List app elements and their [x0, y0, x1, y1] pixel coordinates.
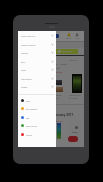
- staticText: Footwear: [21, 86, 28, 88]
- button[interactable]: Coupons: [18, 130, 56, 139]
- staticText: Fashion: [21, 69, 27, 71]
- staticText: Health & Beauty: [21, 78, 32, 80]
- button[interactable]: Big Offers: [20, 49, 78, 54]
- staticText: Jackets &: [54, 94, 62, 96]
- button[interactable]: [55, 80, 62, 85]
- button[interactable]: Sign In: [66, 33, 71, 39]
- button[interactable]: Mobiles: [28, 44, 35, 47]
- staticText: Coupons: [26, 134, 32, 136]
- staticText: Moto G5 Plus: [69, 94, 81, 96]
- staticText: 50% OFF: [55, 120, 63, 123]
- staticText: Mobiles & Electronics: [21, 35, 36, 37]
- staticText: Appliances: [21, 52, 29, 54]
- staticText: Rs 14,999: [69, 97, 78, 99]
- button[interactable]: Laptops & Computers: [18, 40, 56, 49]
- button[interactable]: Footwear: [18, 82, 56, 91]
- staticText: Cart: [76, 37, 79, 39]
- button[interactable]: Home: [56, 34, 59, 38]
- button[interactable]: [57, 123, 61, 139]
- button[interactable]: Health & Beauty: [18, 74, 56, 83]
- staticText: Blog: [26, 117, 30, 119]
- button[interactable]: Books: [18, 57, 56, 66]
- button[interactable]: Get Notifications: [18, 104, 56, 113]
- button[interactable]: Books: [46, 44, 52, 47]
- staticText: Best Mobiles: [54, 63, 68, 65]
- button[interactable]: TV: [54, 44, 57, 47]
- button[interactable]: [72, 74, 82, 93]
- button[interactable]: Blog: [18, 113, 56, 122]
- staticText: Big Offers: [62, 50, 72, 53]
- button[interactable]: Fashion: [18, 65, 56, 74]
- button[interactable]: View All >: [70, 59, 79, 62]
- staticText: Coats: [54, 97, 59, 99]
- button[interactable]: [54, 87, 63, 92]
- button[interactable]: Mobiles & Electronics: [18, 31, 56, 40]
- staticText: Laptops & Computers: [21, 44, 36, 46]
- staticText: Get Notifications: [26, 108, 38, 110]
- staticText: Sign In: [66, 37, 71, 39]
- staticText: 30% OFF: [55, 71, 63, 73]
- staticText: Home: [26, 100, 31, 102]
- staticText: January 2017: [54, 113, 74, 117]
- button[interactable]: Cart: [75, 33, 79, 39]
- button[interactable]: Deals Of the Day: [18, 121, 56, 130]
- button[interactable]: [69, 121, 81, 142]
- button[interactable]: Home: [18, 96, 56, 105]
- button[interactable]: Appliances: [18, 48, 56, 57]
- button[interactable]: Home: [20, 44, 26, 47]
- staticText: Deals Of the Day: [26, 125, 38, 127]
- staticText: Sellers: [54, 67, 60, 69]
- staticText: Books: [21, 61, 26, 63]
